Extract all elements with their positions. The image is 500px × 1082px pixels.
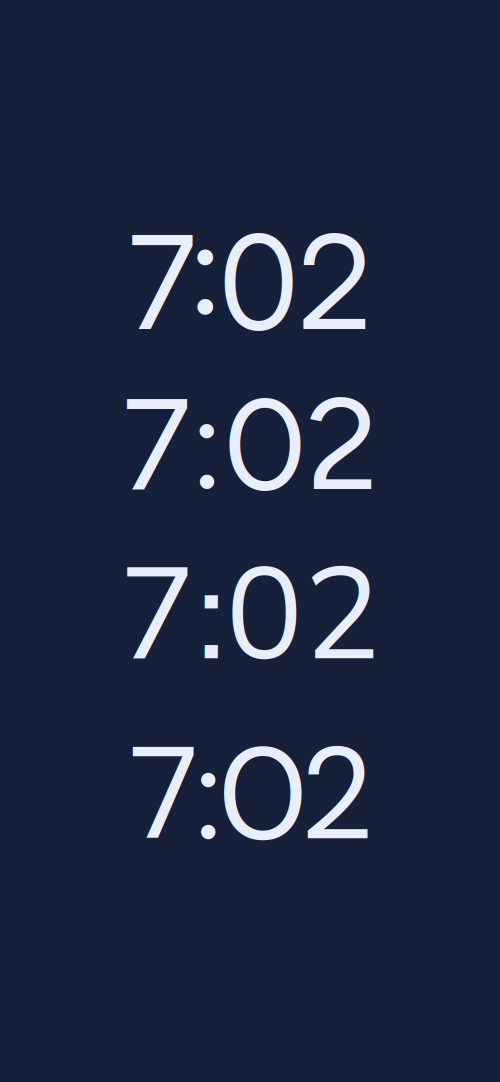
staticText: 7:02 — [129, 204, 371, 360]
staticText: 7:02 — [129, 710, 370, 878]
staticText: 7:02 — [121, 366, 378, 521]
staticText: 7:02 — [118, 527, 381, 704]
